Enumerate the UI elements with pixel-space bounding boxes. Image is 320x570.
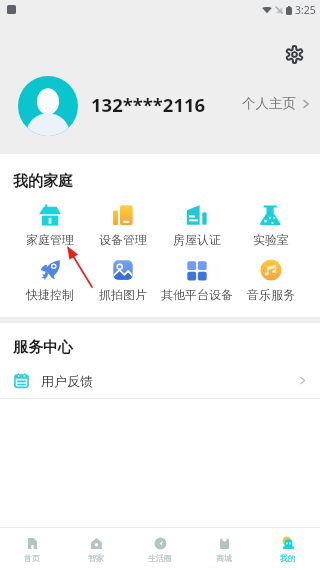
staticText: 我的家庭 [13, 172, 73, 191]
staticText: 抓拍图片 [99, 287, 147, 302]
button[interactable]: 其他平台设备 [160, 259, 234, 302]
button[interactable]: 首页 [0, 536, 64, 563]
staticText: 3:25 [295, 3, 316, 17]
staticText: 用户反馈 [41, 373, 93, 389]
button[interactable]: 生活圈 [128, 536, 192, 563]
button[interactable]: 智家 [64, 536, 128, 563]
staticText: 首页 [24, 553, 40, 563]
staticText: 其他平台设备 [161, 287, 233, 302]
button[interactable]: 实验室 [234, 204, 308, 247]
button[interactable]: 商城 [192, 536, 256, 563]
staticText: 房屋认证 [173, 232, 221, 247]
button[interactable]: 我的 [256, 536, 320, 563]
staticText: 家庭管理 [26, 232, 74, 247]
button[interactable]: 音乐服务 [234, 259, 308, 302]
staticText: 音乐服务 [247, 287, 295, 302]
staticText: 生活圈 [148, 553, 172, 563]
button[interactable]: 房屋认证 [160, 204, 234, 247]
staticText: 智家 [88, 553, 104, 563]
staticText: 实验室 [253, 232, 289, 247]
button[interactable]: 个人主页 [242, 95, 311, 112]
staticText: 个人主页 [242, 95, 296, 112]
button[interactable]: 设备管理 [86, 204, 160, 247]
button[interactable]: 家庭管理 [13, 204, 86, 247]
button[interactable]: 用户反馈 [0, 363, 320, 398]
staticText: 快捷控制 [26, 287, 74, 302]
staticText: 服务中心 [13, 338, 73, 357]
staticText: 我的 [280, 553, 296, 563]
staticText: 132****2116 [91, 92, 206, 117]
button[interactable]: 快捷控制 [13, 259, 86, 302]
button[interactable]: Settings [276, 36, 312, 72]
button[interactable]: 抓拍图片 [86, 259, 160, 302]
staticText: 设备管理 [99, 232, 147, 247]
staticText: 商城 [216, 553, 232, 563]
